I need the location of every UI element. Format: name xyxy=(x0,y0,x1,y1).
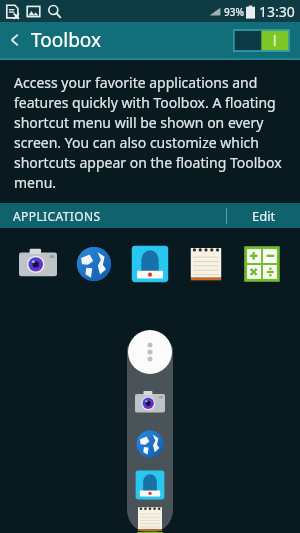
button[interactable]: Calculator xyxy=(238,240,286,288)
button[interactable]: Voice recorder xyxy=(127,464,173,505)
button[interactable]: Internet xyxy=(127,423,173,464)
button[interactable]: Memo xyxy=(182,240,230,288)
staticText: Access your favorite applications and fe… xyxy=(14,73,286,192)
button[interactable]: Edit xyxy=(228,203,300,228)
staticText: APPLICATIONS xyxy=(13,208,101,224)
staticText: 93% xyxy=(224,5,244,19)
staticText: Edit xyxy=(252,207,276,225)
button[interactable]: Camera xyxy=(127,382,173,423)
button[interactable]: Toolbox on/off xyxy=(233,29,290,52)
button[interactable]: Toolbox handle xyxy=(128,330,172,374)
button[interactable]: Memo xyxy=(127,505,173,533)
staticText: Toolbox xyxy=(31,27,101,53)
button[interactable]: Voice recorder xyxy=(126,240,174,288)
button[interactable]: Internet xyxy=(70,240,118,288)
button[interactable]: Back xyxy=(0,23,109,57)
button[interactable]: Camera xyxy=(14,240,62,288)
staticText: 13:30 xyxy=(259,2,295,21)
